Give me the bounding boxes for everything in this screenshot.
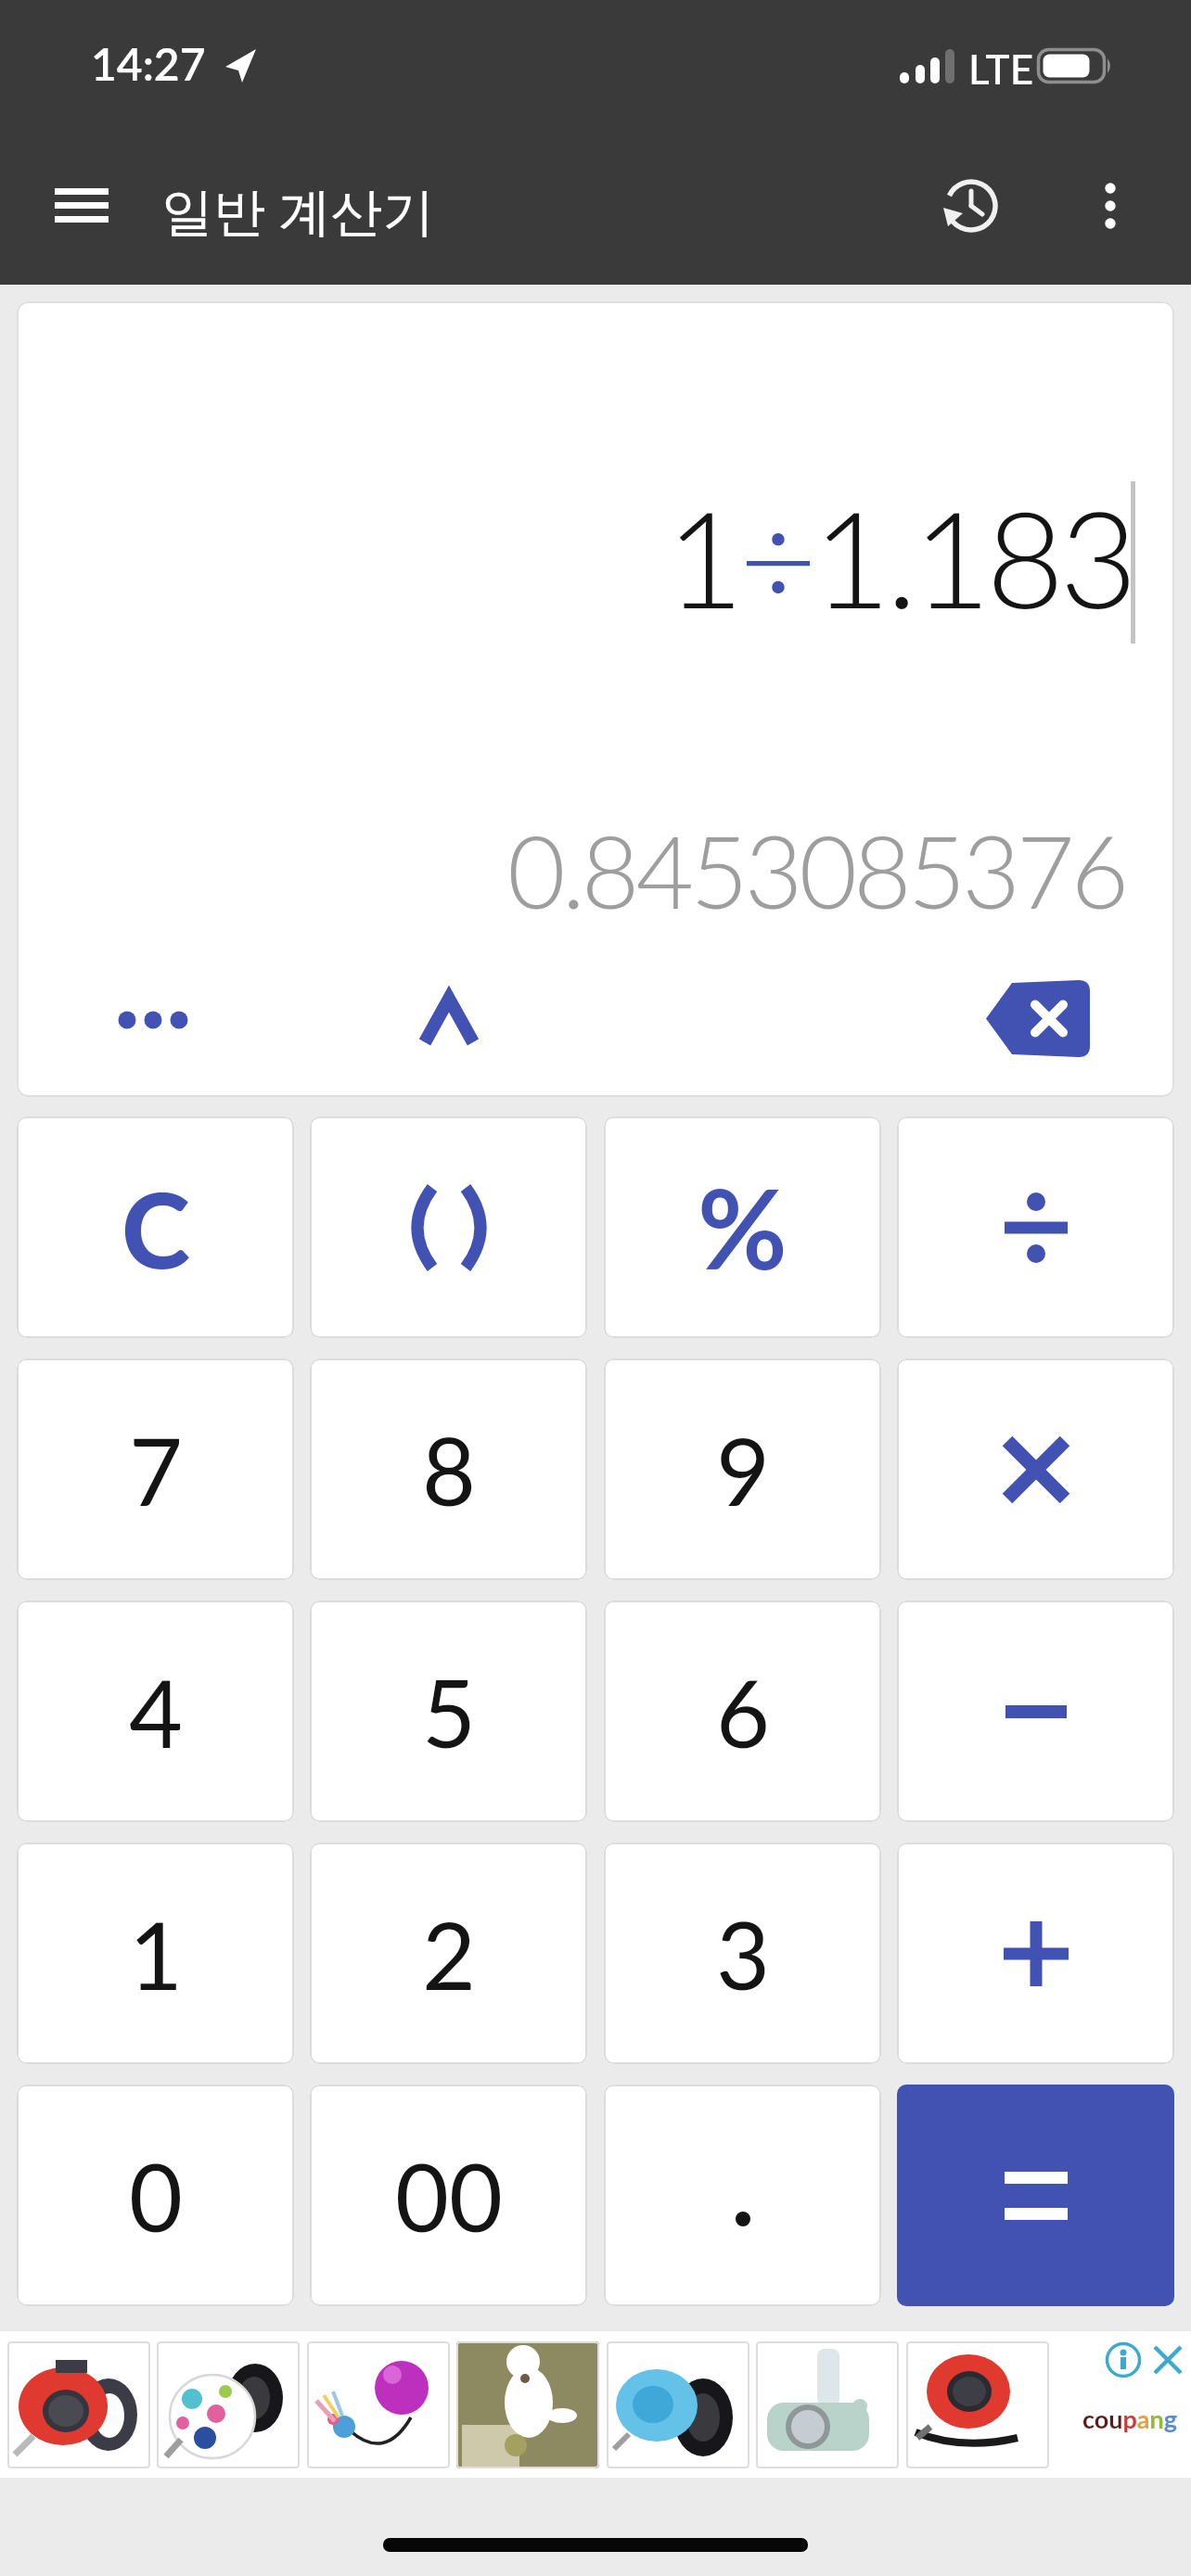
button[interactable] — [897, 1358, 1174, 1580]
button[interactable] — [977, 971, 1099, 1066]
staticText: 2 — [422, 1898, 476, 2009]
button[interactable] — [756, 2341, 899, 2468]
button[interactable] — [310, 1116, 587, 1338]
staticText: 5 — [422, 1656, 476, 1767]
staticText: % — [698, 1162, 788, 1294]
button[interactable] — [42, 174, 122, 237]
button[interactable]: 8 — [310, 1358, 587, 1580]
button[interactable] — [897, 1843, 1174, 2064]
button[interactable] — [897, 2085, 1174, 2306]
button[interactable]: 6 — [604, 1600, 881, 1822]
staticText: 4 — [129, 1656, 183, 1767]
button[interactable]: 2 — [310, 1843, 587, 2064]
button[interactable]: 00 — [310, 2085, 587, 2306]
button[interactable] — [906, 2341, 1049, 2468]
button[interactable]: 0 — [17, 2085, 294, 2306]
button[interactable] — [307, 2341, 450, 2468]
button[interactable] — [1083, 172, 1137, 240]
button[interactable] — [7, 2341, 150, 2468]
button[interactable] — [406, 980, 492, 1058]
staticText: C — [122, 1166, 190, 1290]
button[interactable]: 3 — [604, 1843, 881, 2064]
staticText: 7 — [129, 1414, 183, 1525]
button[interactable] — [897, 1600, 1174, 1822]
staticText: 3 — [716, 1898, 770, 2009]
staticText: 0.8453085376 — [507, 810, 1126, 930]
staticText: coupang — [1082, 2404, 1178, 2433]
staticText: 9 — [716, 1414, 770, 1525]
button[interactable] — [937, 172, 1005, 240]
button[interactable]: 5 — [310, 1600, 587, 1822]
button[interactable]: 7 — [17, 1358, 294, 1580]
staticText: 6 — [716, 1656, 770, 1767]
button[interactable] — [604, 2085, 881, 2306]
button[interactable] — [456, 2341, 599, 2468]
button[interactable] — [897, 1116, 1174, 1338]
staticText: 00 — [395, 2140, 503, 2251]
button[interactable]: C — [17, 1116, 294, 1338]
button[interactable] — [1145, 2337, 1191, 2383]
staticText: 0 — [129, 2140, 183, 2251]
staticText: 8 — [422, 1414, 476, 1525]
staticText: 1÷1.183 — [666, 476, 1133, 637]
staticText: 1 — [129, 1898, 183, 2009]
button[interactable] — [157, 2341, 300, 2468]
staticText: 일반 계산기 — [161, 174, 435, 245]
button[interactable] — [96, 988, 211, 1052]
button[interactable]: 9 — [604, 1358, 881, 1580]
button[interactable]: 1 — [17, 1843, 294, 2064]
staticText: LTE — [968, 45, 1034, 94]
button[interactable]: % — [604, 1116, 881, 1338]
button[interactable] — [1100, 2337, 1146, 2383]
staticText: 14:27 — [91, 37, 206, 91]
button[interactable]: 4 — [17, 1600, 294, 1822]
button[interactable] — [607, 2341, 749, 2468]
